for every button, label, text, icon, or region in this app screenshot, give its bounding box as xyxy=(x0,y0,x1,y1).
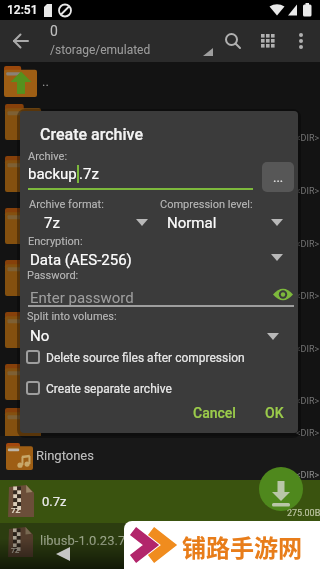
staticText: Cancel xyxy=(193,405,236,421)
staticText: 275.00B xyxy=(287,508,320,519)
staticText: 0 xyxy=(50,23,58,39)
staticText: Ringtones xyxy=(36,448,94,463)
staticText: <DIR> xyxy=(296,133,320,144)
staticText: Delete source files after compression xyxy=(46,351,245,365)
staticText: backup xyxy=(28,165,77,183)
staticText: ... xyxy=(273,170,284,185)
staticText: Create archive xyxy=(40,125,143,144)
staticText: 0.7z xyxy=(42,494,67,509)
staticText: Split into volumes: xyxy=(27,310,117,323)
staticText: 7Z xyxy=(11,547,20,555)
staticText: Archive: xyxy=(28,150,68,163)
staticText: 7z xyxy=(44,214,60,232)
staticText: Create separate archive xyxy=(46,382,172,396)
staticText: Password: xyxy=(27,269,79,282)
button[interactable] xyxy=(219,27,247,55)
button[interactable] xyxy=(0,62,320,104)
button[interactable] xyxy=(0,523,320,569)
staticText: No xyxy=(30,327,50,345)
staticText: Compression level: xyxy=(160,198,253,211)
button[interactable] xyxy=(26,378,256,400)
staticText: <DIR> xyxy=(296,239,320,250)
staticText: <DIR> xyxy=(296,428,320,439)
staticText: /storage/emulated xyxy=(50,43,151,57)
staticText: OK xyxy=(265,405,284,421)
staticText: Archive format: xyxy=(29,198,104,211)
button[interactable] xyxy=(26,347,256,369)
button[interactable] xyxy=(28,282,268,308)
button[interactable] xyxy=(28,322,294,346)
staticText: Normal xyxy=(167,214,217,232)
staticText: Data (AES-256) xyxy=(30,251,132,269)
button[interactable] xyxy=(270,282,296,308)
staticText: <DIR> xyxy=(296,470,320,481)
staticText: 铺路手游网 xyxy=(182,529,302,564)
staticText: Enter password xyxy=(30,289,134,307)
button[interactable] xyxy=(0,480,320,523)
button[interactable] xyxy=(160,208,294,232)
button[interactable]: Cancel xyxy=(182,399,246,427)
staticText: libusb-1.0.23.7 xyxy=(40,533,126,548)
button[interactable] xyxy=(28,245,294,269)
button[interactable] xyxy=(254,27,282,55)
staticText: <DIR> xyxy=(296,344,320,355)
button[interactable] xyxy=(28,161,254,193)
staticText: 12:51 xyxy=(7,3,38,17)
button[interactable] xyxy=(28,208,152,232)
button[interactable]: ... xyxy=(262,162,294,192)
button[interactable] xyxy=(6,26,36,56)
staticText: Encryption: xyxy=(28,235,83,248)
staticText: 7Z xyxy=(11,506,21,515)
staticText: <DIR> xyxy=(296,291,320,302)
staticText: <DIR> xyxy=(296,186,320,197)
button[interactable] xyxy=(0,436,320,480)
button[interactable]: OK xyxy=(252,399,296,427)
staticText: .7z xyxy=(79,165,99,183)
staticText: <DIR> xyxy=(296,396,320,407)
button[interactable] xyxy=(287,27,315,55)
button[interactable] xyxy=(259,467,303,511)
staticText: .. xyxy=(42,74,49,89)
